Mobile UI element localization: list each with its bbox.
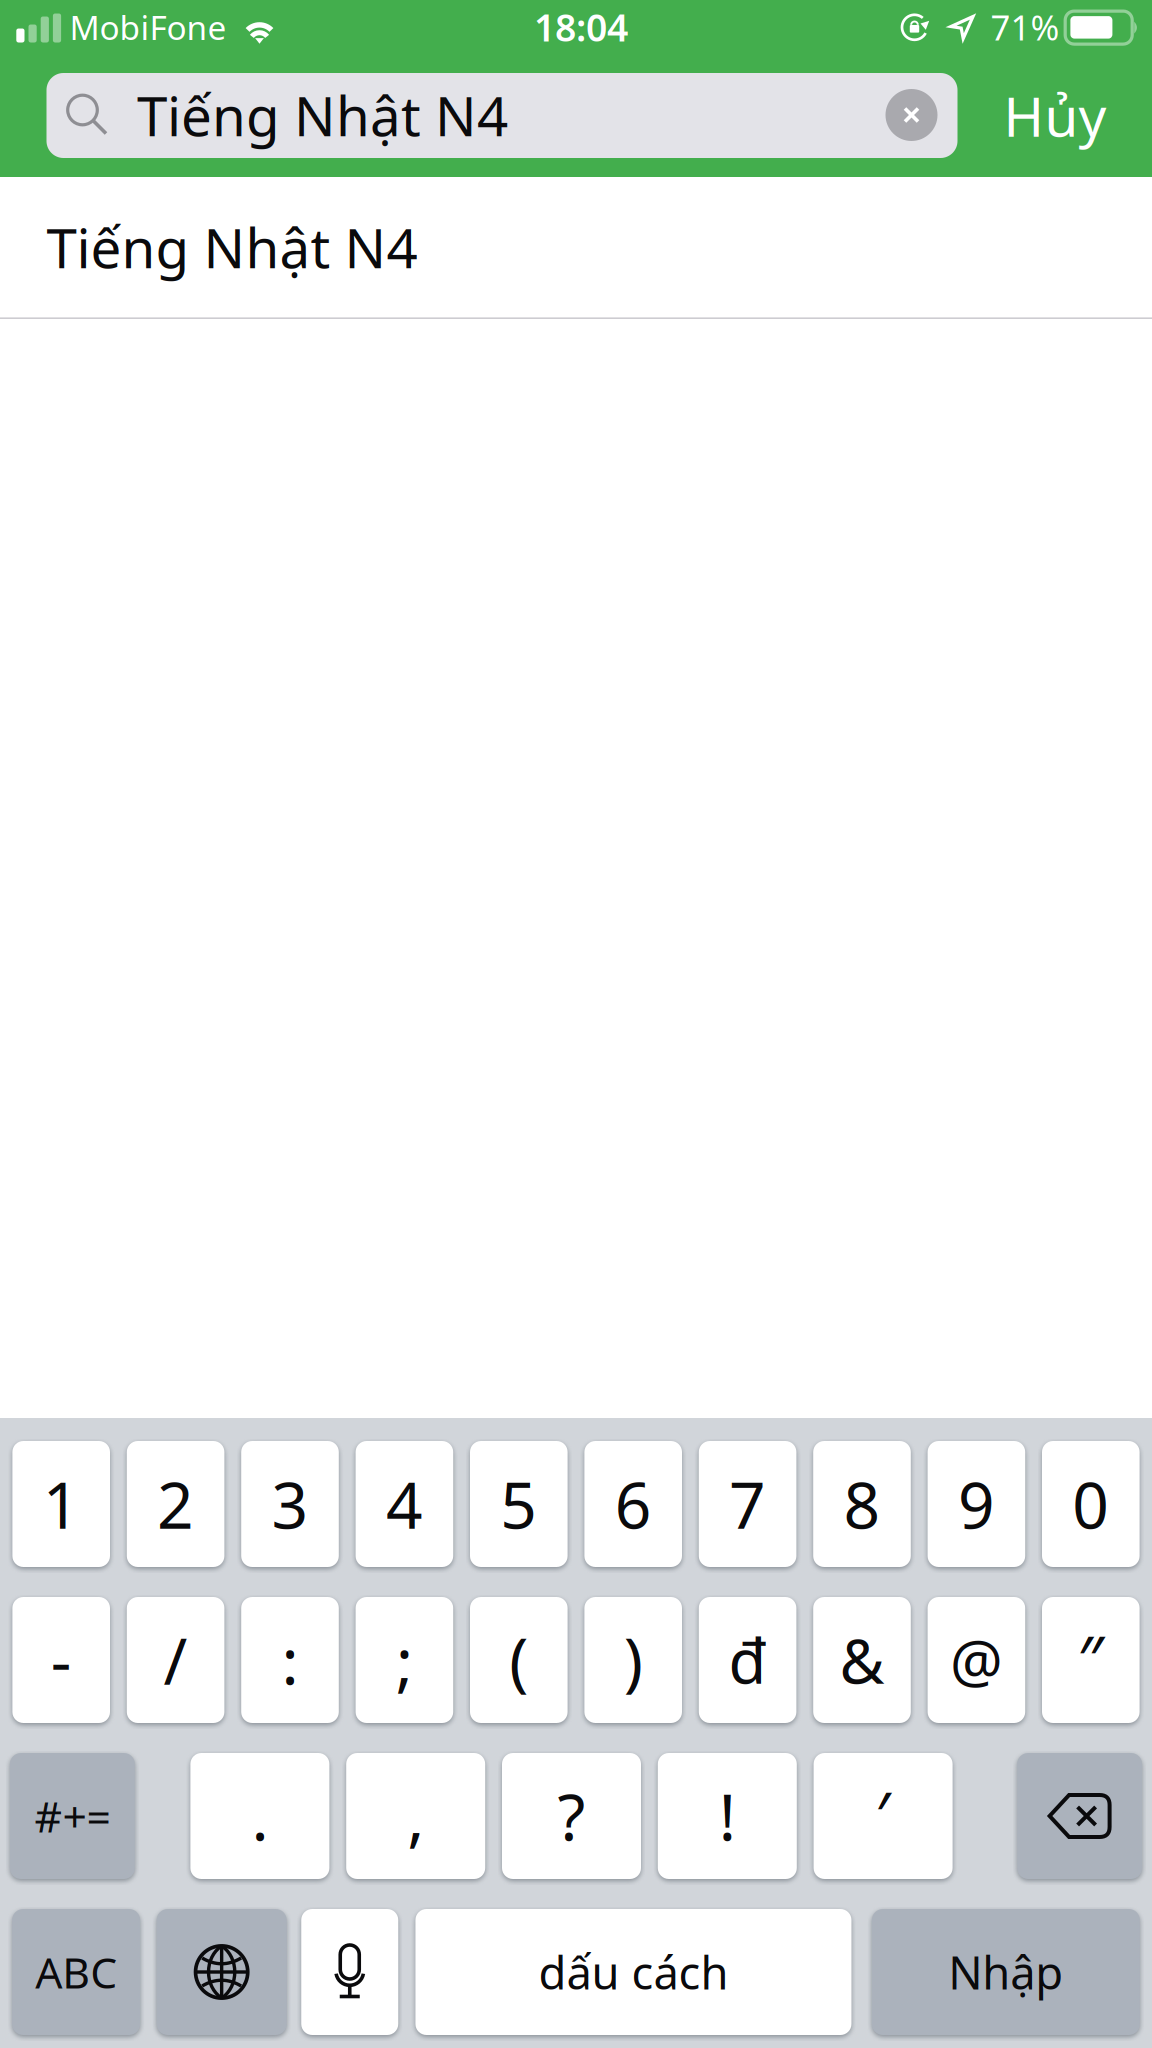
button[interactable]: @	[928, 1595, 1025, 1724]
staticText: Hủy	[1003, 79, 1106, 152]
staticText: đ	[729, 1619, 767, 1701]
button[interactable]: Dictation	[301, 1907, 398, 2036]
button[interactable]: ABC	[12, 1907, 140, 2036]
button[interactable]: đ	[699, 1595, 796, 1724]
button[interactable]: Next keyboard	[157, 1907, 287, 2036]
staticText: Nhập	[948, 1942, 1063, 2002]
button[interactable]: 2	[127, 1439, 224, 1568]
button[interactable]: dấu cách	[415, 1907, 851, 2036]
button[interactable]: 9	[928, 1439, 1025, 1568]
staticText: ″	[1078, 1615, 1104, 1700]
button[interactable]: 6	[584, 1439, 682, 1568]
staticText: -	[51, 1617, 72, 1702]
staticText: #+=	[34, 1788, 110, 1844]
staticText: dấu cách	[538, 1942, 728, 2002]
staticText: 7	[729, 1461, 766, 1546]
staticText: ?	[557, 1773, 585, 1858]
staticText: )	[624, 1617, 643, 1702]
staticText: 0	[1072, 1461, 1109, 1546]
button[interactable]: /	[127, 1595, 224, 1724]
button[interactable]: ″	[1042, 1595, 1140, 1724]
button[interactable]: 0	[1042, 1439, 1140, 1568]
staticText: (	[509, 1617, 528, 1702]
staticText: /	[164, 1617, 188, 1702]
staticText: 5	[500, 1461, 537, 1546]
staticText: 71%	[990, 4, 1059, 50]
staticText: Tiếng Nhật N4	[137, 79, 508, 151]
button[interactable]: Tiếng Nhật N4	[0, 177, 1152, 319]
staticText: Tiếng Nhật N4	[46, 211, 417, 283]
staticText: 9	[958, 1461, 995, 1546]
staticText: !	[719, 1773, 736, 1858]
button[interactable]: !	[658, 1751, 797, 1880]
staticText: :	[281, 1617, 298, 1702]
button[interactable]: .	[190, 1751, 329, 1880]
button[interactable]: ,	[346, 1751, 485, 1880]
button[interactable]: #+=	[10, 1751, 135, 1880]
staticText: 2	[157, 1461, 194, 1546]
button[interactable]: Delete	[1017, 1751, 1142, 1880]
button[interactable]: :	[241, 1595, 339, 1724]
button[interactable]: Hủy	[958, 73, 1152, 158]
button[interactable]: 4	[356, 1439, 453, 1568]
button[interactable]: Clear text	[885, 89, 937, 141]
button[interactable]: 8	[813, 1439, 911, 1568]
staticText: ,	[407, 1773, 424, 1858]
staticText: .	[251, 1773, 268, 1858]
button[interactable]: -	[12, 1595, 110, 1724]
staticText: 1	[43, 1461, 80, 1546]
staticText: 8	[843, 1461, 880, 1546]
staticText: MobiFone	[69, 5, 226, 49]
button[interactable]: 7	[699, 1439, 796, 1568]
staticText: &	[839, 1619, 884, 1701]
button[interactable]: (	[470, 1595, 568, 1724]
staticText: 6	[615, 1461, 652, 1546]
staticText: ′	[876, 1771, 891, 1856]
button[interactable]: &	[813, 1595, 911, 1724]
button[interactable]: 3	[241, 1439, 339, 1568]
button[interactable]: ;	[356, 1595, 453, 1724]
staticText: 4	[386, 1461, 423, 1546]
button[interactable]: 1	[12, 1439, 110, 1568]
staticText: ABC	[35, 1944, 117, 2000]
staticText: 3	[271, 1461, 308, 1546]
staticText: ;	[396, 1617, 413, 1702]
staticText: @	[950, 1621, 1003, 1699]
button[interactable]: ?	[502, 1751, 641, 1880]
staticText: 18:04	[534, 2, 628, 52]
button[interactable]: ′	[814, 1751, 953, 1880]
button[interactable]: )	[584, 1595, 682, 1724]
button[interactable]: 5	[470, 1439, 568, 1568]
button[interactable]: Nhập	[872, 1907, 1140, 2036]
